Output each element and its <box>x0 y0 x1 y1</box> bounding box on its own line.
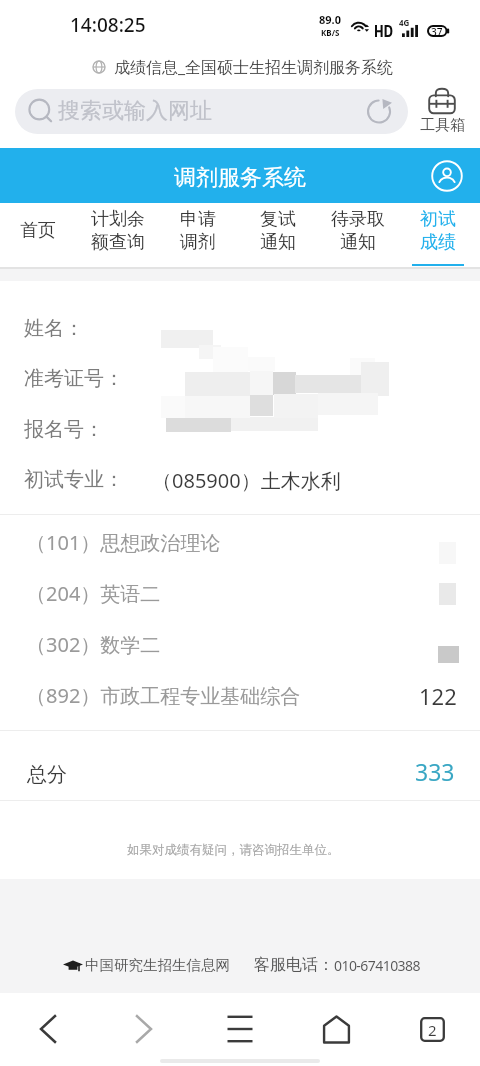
other: Refresh <box>367 100 391 124</box>
staticText: 额查询 <box>91 231 145 254</box>
button[interactable]: （101）思想政治理论 <box>0 518 480 569</box>
button[interactable]: Back <box>0 993 96 1065</box>
button[interactable]: 中国研究生招生信息网 <box>85 956 230 974</box>
staticText: 122 <box>419 681 457 711</box>
staticText: 调剂服务系统 <box>174 164 306 192</box>
staticText: 010-67410388 <box>334 956 420 975</box>
staticText: 如果对成绩有疑问，请咨询招生单位。 <box>127 842 340 858</box>
staticText: 89.0 <box>319 12 341 27</box>
staticText: 搜索或输入网址 <box>58 97 212 125</box>
staticText: 报名号： <box>24 417 104 442</box>
button[interactable]: 待录取 <box>318 203 398 268</box>
staticText: 待录取 <box>331 208 385 231</box>
staticText: 计划余 <box>91 208 145 231</box>
button[interactable]: 复试 <box>238 203 318 268</box>
button[interactable]: Forward <box>96 993 192 1065</box>
staticText: 初试 <box>420 208 456 231</box>
staticText: （204）英语二 <box>26 580 161 607</box>
staticText: 复试 <box>260 208 296 231</box>
staticText: 通知 <box>340 231 376 254</box>
button[interactable]: 首页 <box>0 203 78 268</box>
staticText: （302）数学二 <box>26 631 161 658</box>
staticText: 333 <box>415 756 455 787</box>
staticText: 申请 <box>180 208 216 231</box>
staticText: 工具箱 <box>420 116 465 135</box>
button[interactable]: 搜索或输入网址 <box>15 89 408 134</box>
button[interactable]: 总分 <box>0 730 480 800</box>
staticText: （101）思想政治理论 <box>26 529 221 556</box>
button[interactable]: Tabs <box>384 993 480 1065</box>
staticText: ： <box>318 955 334 975</box>
staticText: 成绩 <box>420 231 456 254</box>
staticText: 37 <box>431 25 443 39</box>
button[interactable]: 申请 <box>158 203 238 268</box>
button[interactable]: Menu <box>192 993 288 1065</box>
button[interactable]: 初试 <box>398 203 478 268</box>
button[interactable]: Account <box>431 160 463 192</box>
staticText: （085900）土木水利 <box>152 467 341 494</box>
staticText: （892）市政工程专业基础综合 <box>26 682 301 709</box>
staticText: 14:08:25 <box>70 12 146 38</box>
staticText: 首页 <box>20 219 56 242</box>
staticText: 2 <box>428 1020 437 1040</box>
staticText: KB/S <box>321 27 340 38</box>
button[interactable]: 计划余 <box>78 203 158 268</box>
staticText: 姓名： <box>24 316 84 341</box>
staticText: 4G <box>399 17 410 28</box>
button[interactable]: （204）英语二 <box>0 569 480 620</box>
staticText: 成绩信息_全国硕士生招生调剂服务系统 <box>114 56 394 78</box>
staticText: 客服电话 <box>254 955 318 975</box>
button[interactable]: 工具箱 <box>417 87 467 135</box>
staticText: 总分 <box>27 762 67 787</box>
staticText: 调剂 <box>180 231 216 254</box>
staticText: 准考证号： <box>24 366 124 391</box>
staticText: 初试专业： <box>24 467 124 492</box>
staticText: 通知 <box>260 231 296 254</box>
button[interactable]: Home <box>288 993 384 1065</box>
button[interactable]: （892）市政工程专业基础综合 <box>0 671 480 722</box>
button[interactable]: （302）数学二 <box>0 620 480 671</box>
